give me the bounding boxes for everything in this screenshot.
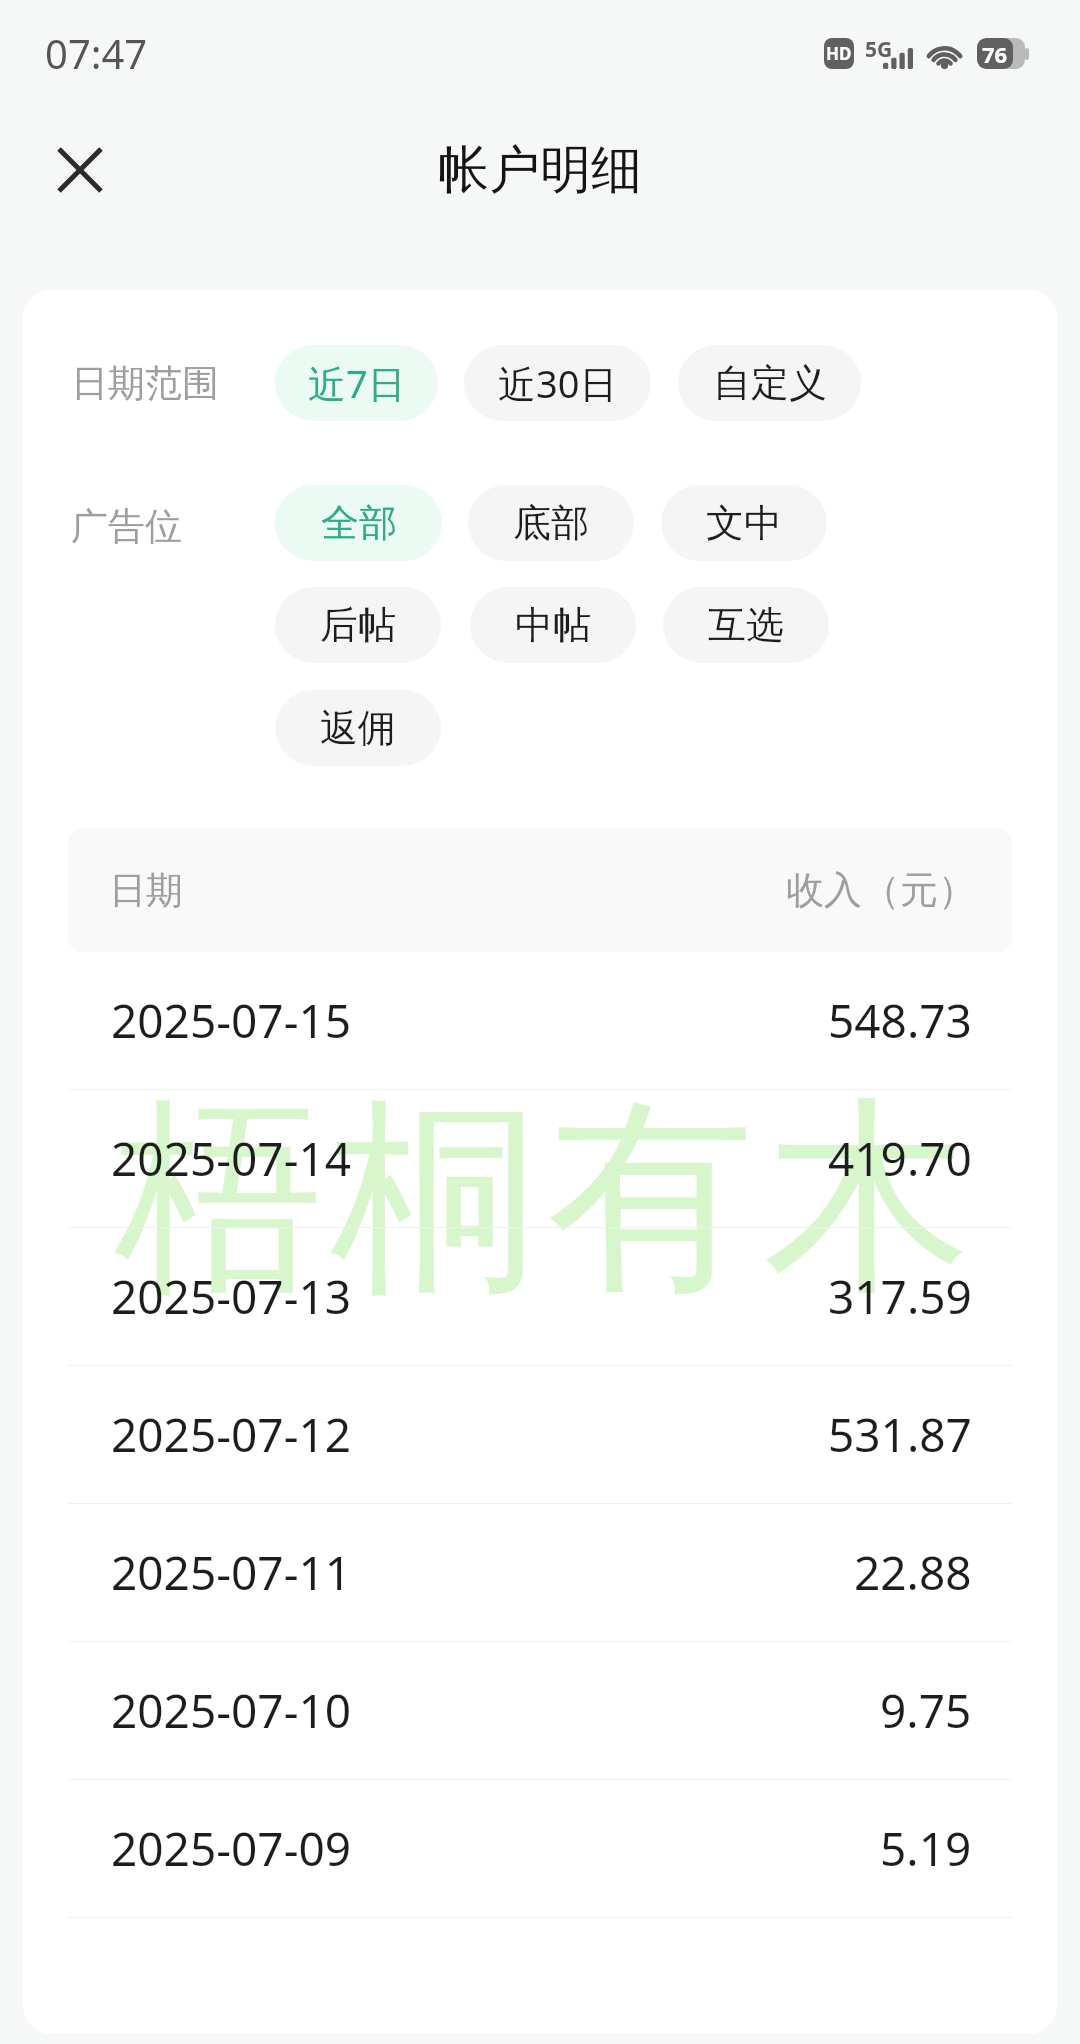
staticText: 自定义 xyxy=(713,359,827,407)
staticText: 419.70 xyxy=(828,1127,972,1190)
staticText: 22.88 xyxy=(854,1541,972,1604)
button[interactable]: 2025-07-12 xyxy=(23,1366,1057,1503)
staticText: 近30日 xyxy=(498,357,618,409)
staticText: 底部 xyxy=(513,499,589,547)
button[interactable]: 底部 xyxy=(468,485,634,561)
staticText: 返佣 xyxy=(320,704,396,752)
staticText: 中帖 xyxy=(515,601,591,649)
staticText: 日期范围 xyxy=(71,360,219,407)
button[interactable]: 2025-07-14 xyxy=(23,1090,1057,1227)
button[interactable]: 互选 xyxy=(663,587,829,663)
staticText: 梧桐有木 xyxy=(111,1069,975,1330)
staticText: 9.75 xyxy=(880,1679,972,1742)
staticText: 5G xyxy=(865,35,893,64)
button[interactable]: 近30日 xyxy=(464,345,651,421)
staticText: 近7日 xyxy=(308,357,406,409)
button[interactable]: 2025-07-09 xyxy=(23,1780,1057,1917)
staticText: 收入（元） xyxy=(786,866,976,914)
staticText: 2025-07-13 xyxy=(111,1265,352,1328)
button[interactable]: 近7日 xyxy=(275,345,438,421)
staticText: 广告位 xyxy=(71,503,182,550)
staticText: 2025-07-09 xyxy=(111,1817,352,1880)
staticText: 2025-07-14 xyxy=(111,1127,352,1190)
button[interactable]: 2025-07-10 xyxy=(23,1642,1057,1779)
button[interactable]: 后帖 xyxy=(275,587,441,663)
button[interactable]: 2025-07-13 xyxy=(23,1228,1057,1365)
button[interactable]: 2025-07-15 xyxy=(23,952,1057,1089)
staticText: 全部 xyxy=(321,499,397,547)
staticText: 2025-07-10 xyxy=(111,1679,352,1742)
button[interactable]: 返佣 xyxy=(275,690,441,766)
staticText: 后帖 xyxy=(320,601,396,649)
staticText: 76 xyxy=(982,39,1008,69)
staticText: 文中 xyxy=(706,499,782,547)
staticText: 531.87 xyxy=(828,1403,972,1466)
staticText: 548.73 xyxy=(828,989,972,1052)
staticText: 2025-07-12 xyxy=(111,1403,352,1466)
staticText: 帐户明细 xyxy=(438,138,642,202)
staticText: 317.59 xyxy=(828,1265,972,1328)
button[interactable]: 自定义 xyxy=(678,345,861,421)
staticText: 2025-07-11 xyxy=(111,1541,352,1604)
button[interactable]: Close xyxy=(35,125,125,215)
button[interactable]: 文中 xyxy=(661,485,827,561)
staticText: 07:47 xyxy=(45,26,148,80)
staticText: HD xyxy=(826,42,852,65)
button[interactable]: 全部 xyxy=(275,485,442,561)
staticText: 2025-07-15 xyxy=(111,989,352,1052)
staticText: 互选 xyxy=(708,601,784,649)
button[interactable]: 中帖 xyxy=(470,587,636,663)
staticText: 5.19 xyxy=(880,1817,972,1880)
button[interactable]: 2025-07-11 xyxy=(23,1504,1057,1641)
staticText: 日期 xyxy=(109,867,183,914)
